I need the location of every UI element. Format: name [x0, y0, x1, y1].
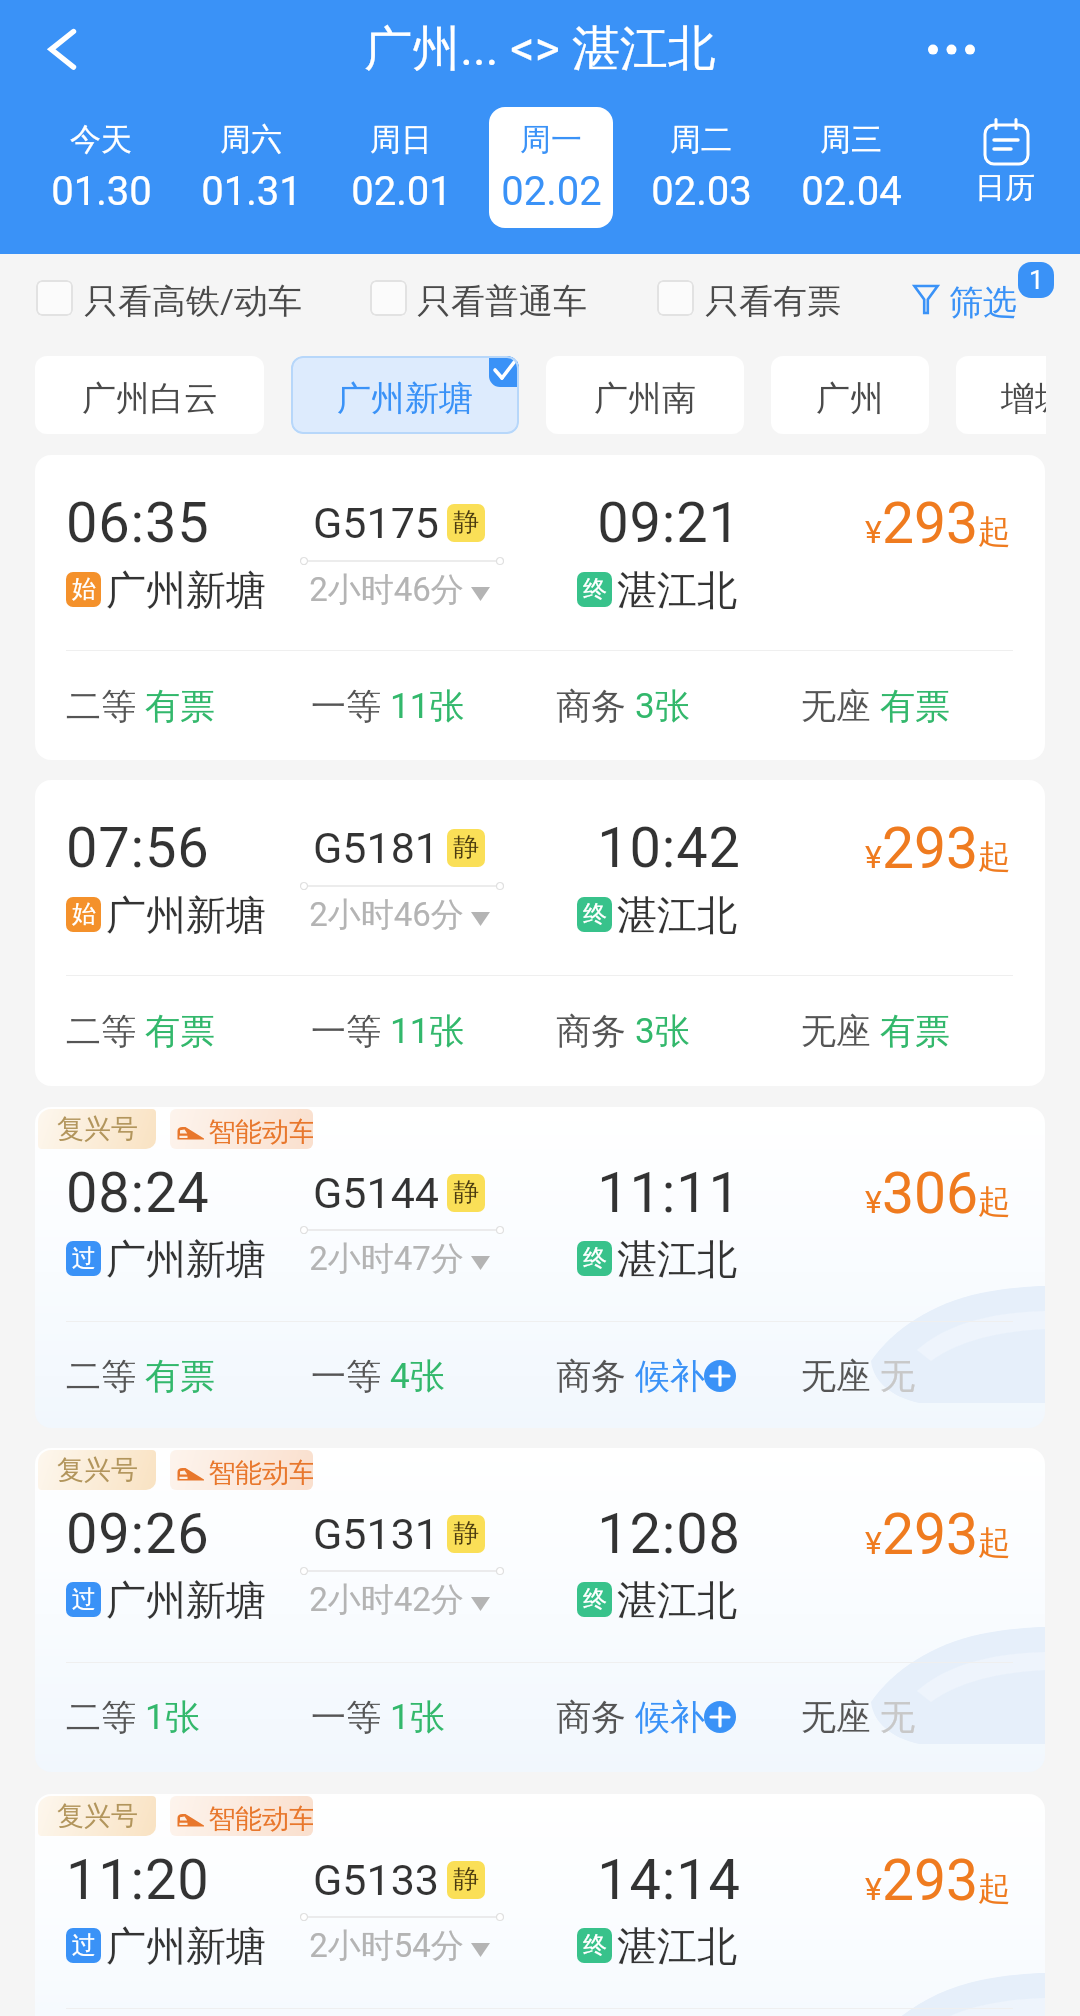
- staticText: 有票: [145, 1354, 215, 1398]
- staticText: 只看普通车: [417, 280, 587, 323]
- staticText: 有票: [145, 1009, 215, 1053]
- staticText: 一等: [311, 1695, 381, 1739]
- staticText: 终: [583, 1584, 607, 1614]
- staticText: 广州新塘: [337, 377, 473, 420]
- button[interactable]: 广州南: [546, 356, 744, 434]
- staticText: 09:21: [597, 490, 741, 556]
- staticText: 无: [880, 1695, 915, 1739]
- button[interactable]: [30, 270, 317, 328]
- staticText: 二等: [66, 1354, 136, 1398]
- staticText: 02.02: [501, 168, 602, 215]
- staticText: G5181: [313, 823, 439, 873]
- button[interactable]: [639, 107, 763, 228]
- staticText: 06:35: [66, 490, 210, 556]
- staticText: 1张: [390, 1695, 445, 1739]
- button[interactable]: [39, 107, 163, 228]
- staticText: 静: [453, 506, 479, 539]
- staticText: 静: [453, 1517, 479, 1550]
- button[interactable]: [35, 455, 1045, 760]
- button[interactable]: Filter: [905, 268, 1020, 330]
- staticText: 商务: [556, 1009, 626, 1053]
- staticText: 增城: [1001, 377, 1046, 420]
- staticText: 终: [583, 1930, 607, 1960]
- staticText: 广州新塘: [106, 1921, 266, 1971]
- staticText: 有票: [880, 684, 950, 728]
- button[interactable]: [189, 107, 313, 228]
- staticText: 终: [583, 574, 607, 604]
- button[interactable]: [35, 1448, 1045, 1772]
- button[interactable]: 广州白云: [35, 356, 264, 434]
- staticText: 3张: [635, 684, 690, 728]
- staticText: 01.31: [201, 168, 302, 215]
- staticText: 候补: [635, 1354, 705, 1398]
- staticText: 终: [583, 899, 607, 929]
- staticText: 过: [72, 1930, 96, 1960]
- staticText: 商务: [556, 684, 626, 728]
- staticText: 筛选: [949, 281, 1017, 324]
- staticText: 智能动车: [208, 1456, 313, 1490]
- staticText: 2小时54分: [309, 1925, 464, 1967]
- staticText: 湛江北: [617, 1575, 737, 1625]
- staticText: 商务: [556, 1354, 626, 1398]
- staticText: 静: [453, 1176, 479, 1209]
- staticText: 复兴号: [57, 1799, 138, 1833]
- staticText: 商务: [556, 1695, 626, 1739]
- staticText: G5144: [313, 1168, 439, 1218]
- button[interactable]: [489, 107, 613, 228]
- staticText: 广州南: [594, 377, 696, 420]
- button[interactable]: 广州新塘: [291, 356, 519, 434]
- button[interactable]: [364, 270, 584, 328]
- button[interactable]: [35, 780, 1045, 1086]
- staticText: ¥306起: [865, 1160, 1011, 1227]
- staticText: 候补: [635, 1695, 705, 1739]
- staticText: 二等: [66, 684, 136, 728]
- staticText: 智能动车: [208, 1802, 313, 1836]
- staticText: 二等: [66, 1695, 136, 1739]
- staticText: 无: [880, 1354, 915, 1398]
- staticText: 周日: [370, 120, 432, 159]
- staticText: 广州新塘: [106, 1234, 266, 1284]
- staticText: 湛江北: [617, 890, 737, 940]
- staticText: 07:56: [66, 815, 210, 881]
- staticText: ¥293起: [865, 1501, 1011, 1568]
- staticText: 3张: [635, 1009, 690, 1053]
- staticText: 周一: [520, 120, 582, 159]
- staticText: 二等: [66, 1009, 136, 1053]
- staticText: 12:08: [597, 1501, 741, 1567]
- staticText: 广州: [816, 377, 884, 420]
- button[interactable]: More options: [905, 14, 995, 84]
- staticText: 1张: [145, 1695, 200, 1739]
- staticText: 1: [1029, 265, 1044, 295]
- staticText: G5133: [313, 1855, 439, 1905]
- staticText: 11张: [390, 684, 465, 728]
- button[interactable]: [35, 1794, 1045, 2016]
- staticText: 02.01: [351, 168, 452, 215]
- button[interactable]: 广州: [771, 356, 929, 434]
- button[interactable]: Back: [16, 9, 106, 89]
- staticText: 广州白云: [82, 377, 218, 420]
- staticText: 始: [72, 899, 96, 929]
- button[interactable]: Calendar: [946, 107, 1066, 228]
- staticText: 只看高铁/动车: [84, 280, 303, 323]
- staticText: 终: [583, 1243, 607, 1273]
- staticText: 01.30: [51, 168, 152, 215]
- staticText: 静: [453, 831, 479, 864]
- staticText: 复兴号: [57, 1453, 138, 1487]
- staticText: 11:20: [66, 1847, 210, 1913]
- staticText: 广州新塘: [106, 890, 266, 940]
- staticText: 有票: [880, 1009, 950, 1053]
- button[interactable]: [651, 270, 839, 328]
- staticText: 无座: [801, 1354, 871, 1398]
- staticText: 广州... <> 湛江北: [364, 19, 716, 79]
- staticText: 周六: [220, 120, 282, 159]
- staticText: 2小时42分: [309, 1579, 464, 1621]
- button[interactable]: [339, 107, 463, 228]
- staticText: 湛江北: [617, 1234, 737, 1284]
- button[interactable]: [789, 107, 913, 228]
- staticText: 静: [453, 1863, 479, 1896]
- button[interactable]: 增城: [956, 356, 1046, 434]
- staticText: ¥293起: [865, 815, 1011, 882]
- button[interactable]: [35, 1107, 1045, 1428]
- staticText: 11张: [390, 1009, 465, 1053]
- staticText: ¥293起: [865, 1847, 1011, 1914]
